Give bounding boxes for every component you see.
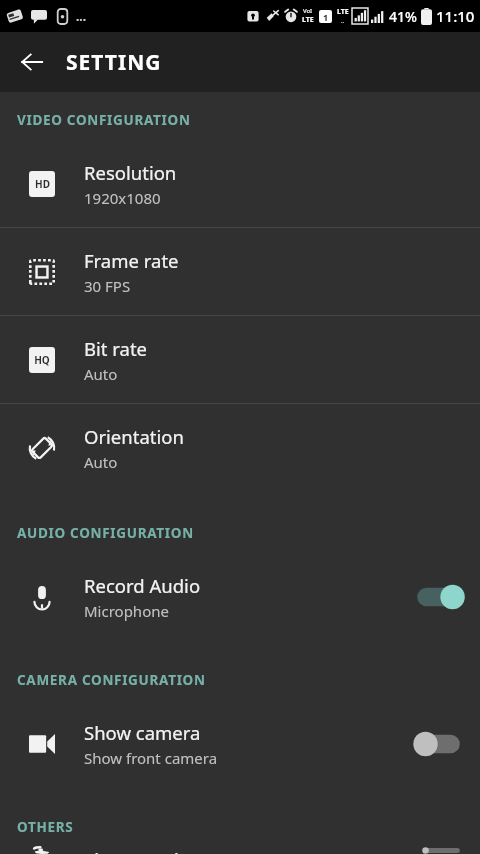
staticText: 30 FPS: [84, 276, 131, 296]
staticText: AUDIO CONFIGURATION: [17, 524, 194, 542]
staticText: 11:10: [436, 6, 475, 26]
staticText: Show touches: [84, 847, 205, 854]
button[interactable]: Show camera: [0, 700, 480, 787]
staticText: VIDEO CONFIGURATION: [17, 111, 191, 129]
staticText: ...: [76, 8, 87, 24]
staticText: HD: [35, 177, 50, 191]
button[interactable]: HD: [0, 140, 480, 227]
staticText: LTE: [337, 7, 349, 17]
staticText: Microphone: [84, 601, 169, 621]
staticText: ..: [341, 17, 345, 25]
staticText: Record Audio: [84, 573, 201, 598]
staticText: Bit rate: [84, 336, 148, 361]
staticText: Auto: [84, 364, 118, 384]
staticText: Orientation: [84, 424, 184, 449]
staticText: OTHERS: [17, 818, 74, 836]
button[interactable]: Record Audio: [0, 553, 480, 640]
staticText: Frame rate: [84, 248, 179, 273]
button[interactable]: Back: [8, 38, 56, 86]
staticText: Show camera: [84, 720, 201, 745]
staticText: 1: [323, 11, 329, 23]
button[interactable]: Show touches off: [410, 847, 466, 854]
staticText: Show front camera: [84, 748, 218, 768]
button[interactable]: Record Audio on: [410, 575, 466, 619]
staticText: Resolution: [84, 160, 177, 185]
staticText: CAMERA CONFIGURATION: [17, 671, 206, 689]
button[interactable]: Show camera off: [410, 722, 466, 766]
staticText: HQ: [34, 353, 50, 367]
staticText: Auto: [84, 452, 118, 472]
staticText: VoI: [303, 7, 313, 15]
staticText: LTE: [302, 15, 314, 25]
staticText: 41%: [389, 7, 417, 26]
button[interactable]: Orientation: [0, 404, 480, 491]
button[interactable]: Frame rate: [0, 228, 480, 315]
staticText: 1920x1080: [84, 188, 161, 208]
staticText: SETTING: [66, 48, 162, 77]
button[interactable]: HQ: [0, 316, 480, 403]
button[interactable]: Show touches: [0, 847, 480, 854]
